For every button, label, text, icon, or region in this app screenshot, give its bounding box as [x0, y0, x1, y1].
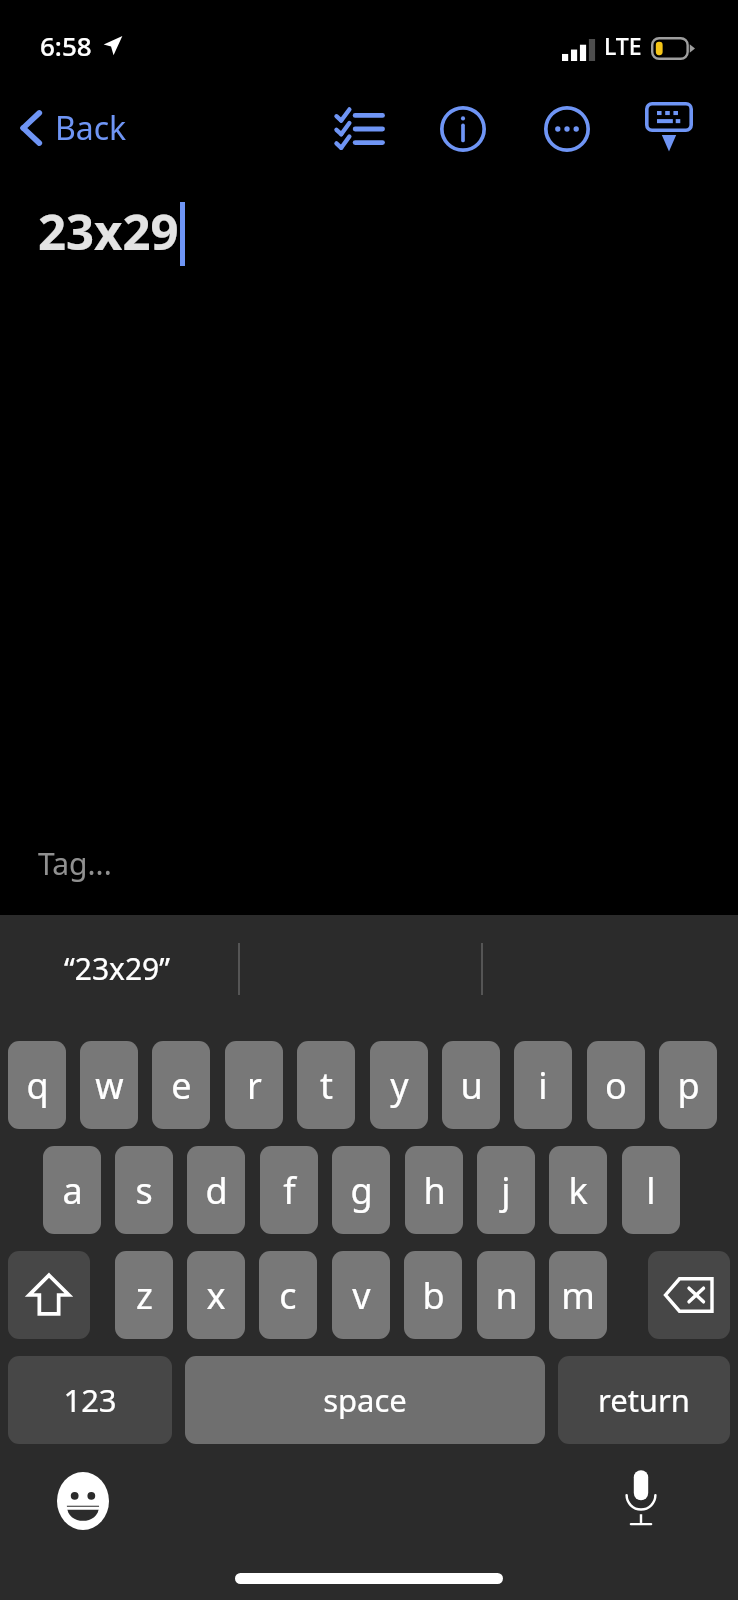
- staticText: r: [247, 1061, 262, 1110]
- button[interactable]: e: [152, 1041, 210, 1129]
- button[interactable]: i: [514, 1041, 572, 1129]
- staticText: l: [646, 1166, 656, 1215]
- button[interactable]: f: [260, 1146, 318, 1234]
- button[interactable]: r: [225, 1041, 283, 1129]
- button[interactable]: Dictate: [610, 1467, 672, 1529]
- staticText: k: [568, 1166, 588, 1215]
- staticText: v: [352, 1271, 371, 1320]
- button[interactable]: return: [558, 1356, 730, 1444]
- staticText: w: [95, 1061, 124, 1110]
- button[interactable]: Shift: [8, 1251, 90, 1339]
- button[interactable]: m: [549, 1251, 607, 1339]
- button[interactable]: p: [659, 1041, 717, 1129]
- button[interactable]: s: [115, 1146, 173, 1234]
- staticText: x: [206, 1271, 226, 1320]
- button[interactable]: Checklist: [330, 100, 388, 158]
- button[interactable]: w: [80, 1041, 138, 1129]
- staticText: y: [390, 1061, 409, 1110]
- staticText: d: [205, 1166, 228, 1215]
- staticText: 23x29: [38, 198, 179, 265]
- button[interactable]: More options: [538, 100, 596, 158]
- staticText: e: [171, 1061, 192, 1110]
- staticText: Tag...: [38, 843, 112, 884]
- button[interactable]: h: [405, 1146, 463, 1234]
- button[interactable]: t: [297, 1041, 355, 1129]
- staticText: j: [501, 1166, 511, 1215]
- staticText: Back: [55, 106, 127, 150]
- staticText: b: [422, 1271, 445, 1320]
- staticText: n: [495, 1271, 518, 1320]
- button[interactable]: g: [332, 1146, 390, 1234]
- staticText: s: [135, 1166, 153, 1215]
- button[interactable]: Emoji: [52, 1470, 114, 1532]
- staticText: 123: [63, 1379, 117, 1421]
- button[interactable]: x: [187, 1251, 245, 1339]
- button[interactable]: c: [259, 1251, 317, 1339]
- button[interactable]: n: [477, 1251, 535, 1339]
- staticText: return: [598, 1379, 690, 1421]
- button[interactable]: a: [43, 1146, 101, 1234]
- button[interactable]: z: [115, 1251, 173, 1339]
- button[interactable]: q: [8, 1041, 66, 1129]
- staticText: g: [350, 1166, 373, 1215]
- staticText: 6:58: [40, 28, 92, 63]
- button[interactable]: j: [477, 1146, 535, 1234]
- button[interactable]: o: [587, 1041, 645, 1129]
- button[interactable]: 123: [8, 1356, 172, 1444]
- staticText: LTE: [604, 30, 642, 61]
- staticText: c: [279, 1271, 297, 1320]
- button[interactable]: y: [370, 1041, 428, 1129]
- staticText: space: [323, 1379, 407, 1421]
- staticText: h: [423, 1166, 446, 1215]
- staticText: p: [677, 1061, 700, 1110]
- staticText: o: [605, 1061, 627, 1110]
- button[interactable]: d: [187, 1146, 245, 1234]
- button[interactable]: Back: [10, 98, 137, 158]
- button[interactable]: “23x29”: [64, 948, 171, 989]
- button[interactable]: v: [332, 1251, 390, 1339]
- staticText: q: [26, 1061, 49, 1110]
- button[interactable]: b: [404, 1251, 462, 1339]
- button[interactable]: space: [185, 1356, 545, 1444]
- staticText: f: [283, 1166, 296, 1215]
- staticText: u: [460, 1061, 483, 1110]
- button[interactable]: k: [549, 1146, 607, 1234]
- staticText: z: [136, 1271, 153, 1320]
- button[interactable]: Backspace: [648, 1251, 730, 1339]
- button[interactable]: Hide keyboard: [640, 98, 698, 156]
- button[interactable]: u: [442, 1041, 500, 1129]
- button[interactable]: l: [622, 1146, 680, 1234]
- staticText: i: [538, 1061, 548, 1110]
- staticText: a: [62, 1166, 83, 1215]
- staticText: m: [561, 1271, 595, 1320]
- button[interactable]: Info: [434, 100, 492, 158]
- staticText: t: [320, 1061, 333, 1110]
